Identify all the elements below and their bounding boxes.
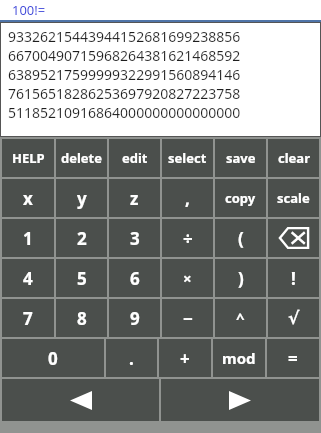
staticText: ( [238,227,244,250]
staticText: copy [225,189,256,207]
button[interactable]: z [109,179,160,217]
button[interactable]: 9 [109,299,160,337]
button[interactable]: ^ [215,299,266,337]
staticText: 5 [77,267,87,290]
button[interactable]: 4 [2,259,54,297]
staticText: ) [238,267,244,290]
button[interactable]: 1 [2,219,54,257]
button[interactable]: edit [109,139,160,177]
staticText: 4 [23,267,33,290]
button[interactable]: + [159,339,211,377]
button[interactable]: copy [215,179,266,217]
button[interactable]: x [2,179,54,217]
button[interactable]: ( [215,219,266,257]
staticText: 3 [130,227,140,250]
button[interactable]: scale [268,179,319,217]
staticText: 63895217599999322991560894146 [8,65,241,84]
staticText: ^ [236,308,245,328]
button[interactable]: Next [161,379,319,421]
staticText: √ [288,308,300,328]
staticText: 6 [130,267,140,290]
staticText: select [168,149,207,167]
staticText: − [183,307,193,330]
staticText: 8 [77,307,87,330]
button[interactable]: HELP [2,139,54,177]
button[interactable]: clear [268,139,319,177]
staticText: 76156518286253697920827223758 [8,84,241,103]
button[interactable]: ÷ [162,219,213,257]
button[interactable]: ! [268,259,319,297]
button[interactable]: 8 [56,299,107,337]
button[interactable]: . [106,339,157,377]
button[interactable]: − [162,299,213,337]
staticText: 9 [130,307,140,330]
staticText: z [130,187,139,210]
button[interactable]: 2 [56,219,107,257]
staticText: clear [278,149,310,167]
button[interactable]: y [56,179,107,217]
button[interactable]: select [162,139,213,177]
staticText: ÷ [183,227,193,250]
staticText: × [183,268,192,288]
staticText: = [288,347,298,370]
staticText: delete [61,149,103,167]
button[interactable]: 5 [56,259,107,297]
button[interactable]: ) [215,259,266,297]
staticText: ! [291,267,296,290]
staticText: , [185,187,190,210]
staticText: 100!= [12,1,46,19]
staticText: 51185210916864000000000000000 [8,103,241,122]
button[interactable]: √ [268,299,319,337]
staticText: x [23,187,33,210]
staticText: 2 [77,227,87,250]
button[interactable]: mod [213,339,265,377]
staticText: 93326215443944152681699238856 [8,27,241,46]
button[interactable]: 3 [109,219,160,257]
staticText: 7 [23,307,33,330]
button[interactable]: 7 [2,299,54,337]
staticText: y [77,187,87,210]
button[interactable]: delete [56,139,107,177]
staticText: edit [122,149,148,167]
staticText: save [226,149,256,167]
button[interactable]: Previous [2,379,159,421]
staticText: 66700490715968264381621468592 [8,46,241,65]
button[interactable]: × [162,259,213,297]
staticText: . [129,347,134,370]
staticText: scale [277,189,310,207]
button[interactable]: , [162,179,213,217]
button[interactable]: save [215,139,266,177]
button[interactable]: 0 [2,339,104,377]
staticText: 1 [23,227,33,250]
staticText: + [180,347,190,370]
staticText: mod [222,348,256,368]
button[interactable]: 6 [109,259,160,297]
staticText: HELP [12,149,45,167]
staticText: 0 [48,347,58,370]
button[interactable]: Backspace [268,219,319,257]
button[interactable]: = [267,339,319,377]
